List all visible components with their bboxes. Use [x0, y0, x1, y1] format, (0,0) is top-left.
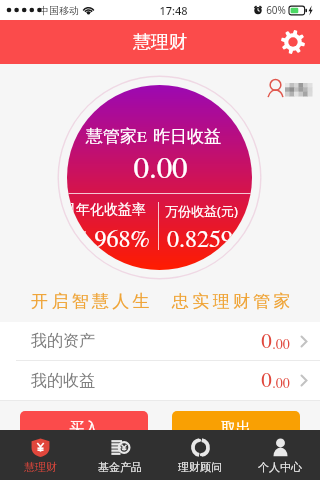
staticText: 慧理财	[133, 31, 187, 54]
staticText: 开启智慧人生	[31, 291, 153, 312]
staticText: 忠实理财管家	[172, 291, 294, 312]
button[interactable]: Settings	[277, 26, 309, 58]
button[interactable]: User profile	[267, 77, 312, 101]
staticText: .00	[272, 338, 290, 352]
staticText: 我的收益	[31, 371, 95, 391]
button[interactable]: 买入	[20, 411, 148, 445]
staticText: 我的资产	[31, 331, 95, 351]
staticText: 理财顾问	[178, 460, 222, 474]
staticText: 0	[261, 331, 272, 352]
staticText: .00	[272, 377, 290, 391]
button[interactable]: 取出	[172, 411, 300, 445]
button[interactable]: 个人中心	[240, 430, 320, 480]
staticText: 4.968%	[76, 228, 150, 252]
staticText: 昨日收益	[153, 126, 221, 147]
staticText: 慧管家	[86, 126, 137, 147]
button[interactable]: 慧管家	[67, 85, 252, 270]
staticText: 万份收益(元)	[165, 202, 238, 220]
staticText: 60%	[266, 3, 286, 17]
staticText: 日年化收益率	[67, 201, 146, 219]
staticText: 17:48	[159, 3, 188, 18]
button[interactable]: 理财顾问	[160, 430, 240, 480]
staticText: 0	[261, 370, 272, 391]
staticText: 基金产品	[98, 460, 142, 474]
staticText: 中国移动	[39, 4, 79, 17]
staticText: 取出	[221, 419, 251, 438]
button[interactable]: 我的资产	[31, 322, 308, 360]
staticText: 个人中心	[258, 460, 302, 474]
button[interactable]: 我的收益	[31, 361, 308, 400]
staticText: 0.82590	[167, 228, 245, 252]
button[interactable]: 基金产品	[80, 430, 160, 480]
button[interactable]: 慧理财	[0, 430, 80, 480]
staticText: 0.00	[133, 153, 188, 184]
staticText: 慧理财	[24, 460, 57, 474]
staticText: 买入	[69, 419, 99, 438]
staticText: E	[137, 129, 147, 145]
